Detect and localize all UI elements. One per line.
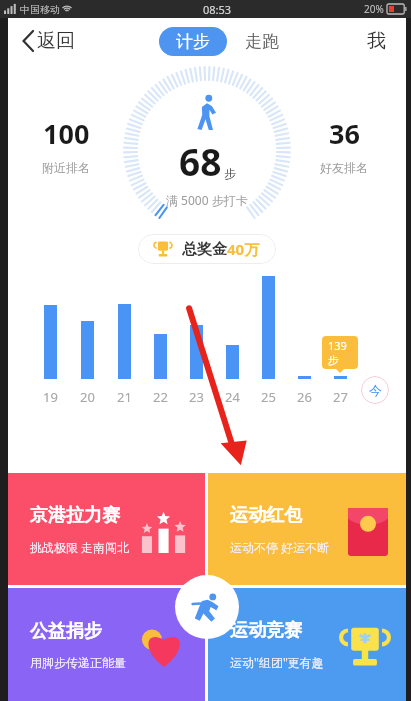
staticText: 好友排名: [320, 160, 368, 175]
button[interactable]: 我: [363, 25, 390, 57]
staticText: 23: [189, 388, 204, 406]
button[interactable]: 公益捐步: [8, 588, 205, 701]
staticText: 08:53: [203, 2, 232, 17]
staticText: 36: [329, 115, 360, 152]
staticText: 21: [117, 388, 132, 406]
staticText: 中国移动: [20, 3, 60, 16]
staticText: 20: [80, 388, 95, 406]
staticText: 100: [43, 115, 90, 152]
staticText: 返回: [37, 29, 75, 53]
staticText: 20%: [364, 2, 384, 16]
staticText: 今: [369, 382, 382, 398]
staticText: 139步: [328, 338, 352, 367]
staticText: 40万: [227, 239, 260, 259]
staticText: 公益捐步: [30, 620, 102, 643]
staticText: 总奖金: [182, 240, 227, 259]
staticText: 计步: [176, 31, 210, 52]
staticText: 我: [367, 29, 386, 53]
staticText: 27: [333, 388, 348, 406]
staticText: 19: [43, 388, 58, 406]
staticText: 26: [297, 388, 312, 406]
staticText: 24: [225, 388, 240, 406]
button[interactable]: 运动竞赛: [208, 588, 406, 701]
staticText: 运动红包: [230, 504, 302, 527]
staticText: 用脚步传递正能量: [30, 655, 126, 670]
button[interactable]: 返回: [18, 25, 79, 57]
button[interactable]: 走跑: [241, 27, 283, 56]
button[interactable]: 今天: [361, 376, 389, 404]
staticText: 25: [261, 388, 276, 406]
staticText: 22: [153, 388, 168, 406]
staticText: 挑战极限 走南闯北: [30, 539, 130, 555]
staticText: 京港拉力赛: [30, 504, 120, 527]
button[interactable]: 计步: [159, 27, 227, 56]
button[interactable]: 京港拉力赛: [8, 473, 205, 585]
button[interactable]: 开始跑步: [175, 575, 239, 639]
staticText: 运动"组团"更有趣: [230, 654, 324, 670]
staticText: 附近排名: [42, 160, 90, 175]
staticText: 运动竞赛: [230, 619, 302, 642]
staticText: 68: [179, 136, 222, 186]
staticText: 走跑: [245, 31, 279, 52]
button[interactable]: 运动红包: [208, 473, 406, 585]
staticText: 运动不停 好运不断: [230, 539, 330, 555]
button[interactable]: 总奖金: [138, 234, 276, 264]
staticText: 步: [224, 166, 236, 181]
staticText: 满 5000 步打卡: [166, 192, 248, 208]
